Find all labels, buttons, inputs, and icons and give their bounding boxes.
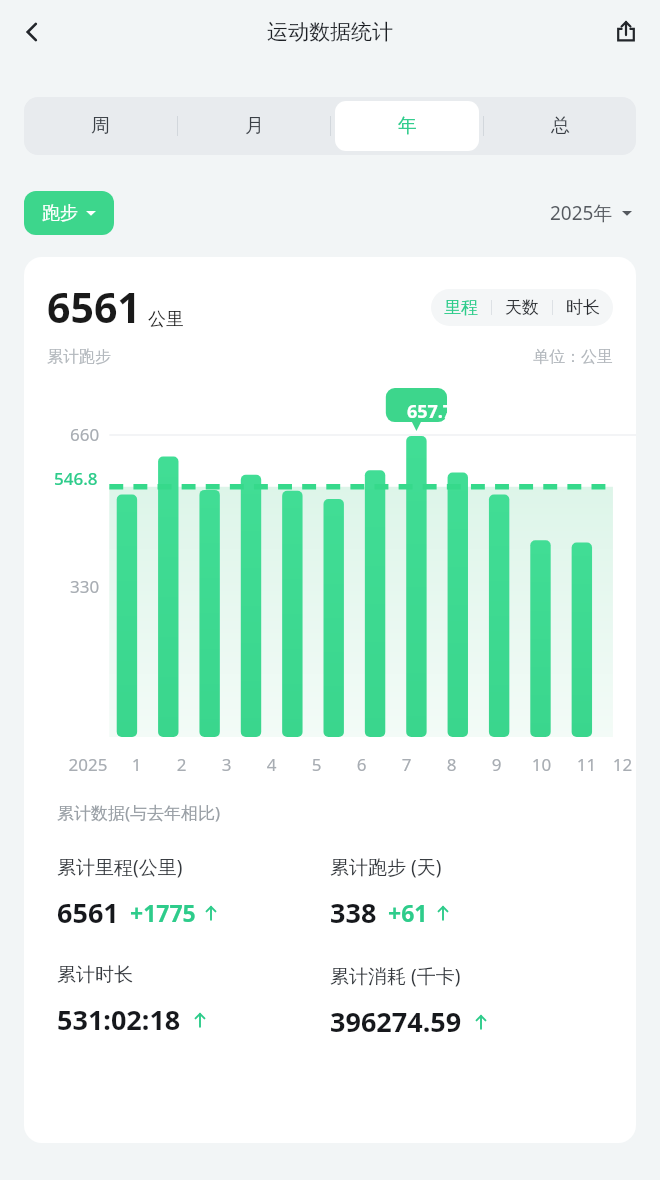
staticText: 周 bbox=[91, 114, 110, 138]
staticText: 11 bbox=[564, 753, 609, 776]
staticText: 7 bbox=[384, 753, 429, 776]
staticText: 338 bbox=[330, 894, 377, 931]
staticText: 年 bbox=[398, 114, 417, 138]
staticText: 8 bbox=[429, 753, 474, 776]
staticText: 330 bbox=[70, 575, 100, 598]
staticText: 3 bbox=[204, 753, 249, 776]
button[interactable]: 年 bbox=[335, 101, 479, 151]
button[interactable]: 跑步 bbox=[24, 191, 114, 235]
staticText: 531:02:18 bbox=[57, 1001, 181, 1038]
staticText: 跑步 bbox=[42, 202, 78, 225]
staticText: 660 bbox=[70, 423, 100, 446]
staticText: 396274.59 bbox=[330, 1003, 462, 1040]
staticText: 5 bbox=[294, 753, 339, 776]
button[interactable]: 天数 bbox=[492, 289, 552, 326]
staticText: 累计消耗 (千卡) bbox=[330, 963, 461, 989]
staticText: +1775 bbox=[130, 897, 196, 928]
staticText: 10 bbox=[519, 753, 564, 776]
staticText: 4 bbox=[249, 753, 294, 776]
button[interactable]: 月 bbox=[182, 101, 326, 151]
staticText: 累计里程(公里) bbox=[57, 854, 183, 880]
staticText: 公里 bbox=[148, 308, 184, 331]
staticText: 2025 bbox=[62, 753, 114, 776]
staticText: 累计时长 bbox=[57, 963, 133, 987]
staticText: 657.7 bbox=[397, 399, 463, 424]
staticText: 12 bbox=[609, 753, 636, 776]
staticText: 9 bbox=[474, 753, 519, 776]
staticText: 2 bbox=[159, 753, 204, 776]
staticText: 累计跑步 bbox=[47, 347, 111, 367]
staticText: +61 bbox=[388, 897, 428, 928]
button[interactable]: 2025年 bbox=[546, 194, 636, 232]
staticText: 累计跑步 (天) bbox=[330, 854, 442, 880]
staticText: 月 bbox=[245, 114, 264, 138]
staticText: 6 bbox=[339, 753, 384, 776]
staticText: 6561 bbox=[47, 279, 141, 335]
staticText: 里程 bbox=[444, 297, 478, 318]
button[interactable]: Back bbox=[8, 8, 56, 56]
button[interactable]: 时长 bbox=[553, 289, 613, 326]
staticText: 天数 bbox=[505, 297, 539, 318]
staticText: 总 bbox=[551, 114, 570, 138]
button[interactable]: 总 bbox=[488, 101, 632, 151]
staticText: 546.8 bbox=[54, 467, 98, 490]
staticText: 时长 bbox=[566, 297, 600, 318]
staticText: 1 bbox=[114, 753, 159, 776]
staticText: 单位：公里 bbox=[533, 347, 613, 367]
button[interactable]: 里程 bbox=[431, 289, 491, 326]
staticText: 2025年 bbox=[550, 200, 613, 226]
staticText: 运动数据统计 bbox=[267, 19, 393, 45]
button[interactable]: 周 bbox=[28, 101, 173, 151]
staticText: 6561 bbox=[57, 894, 119, 931]
button[interactable]: Share bbox=[602, 8, 650, 56]
staticText: 累计数据(与去年相比) bbox=[57, 801, 221, 824]
